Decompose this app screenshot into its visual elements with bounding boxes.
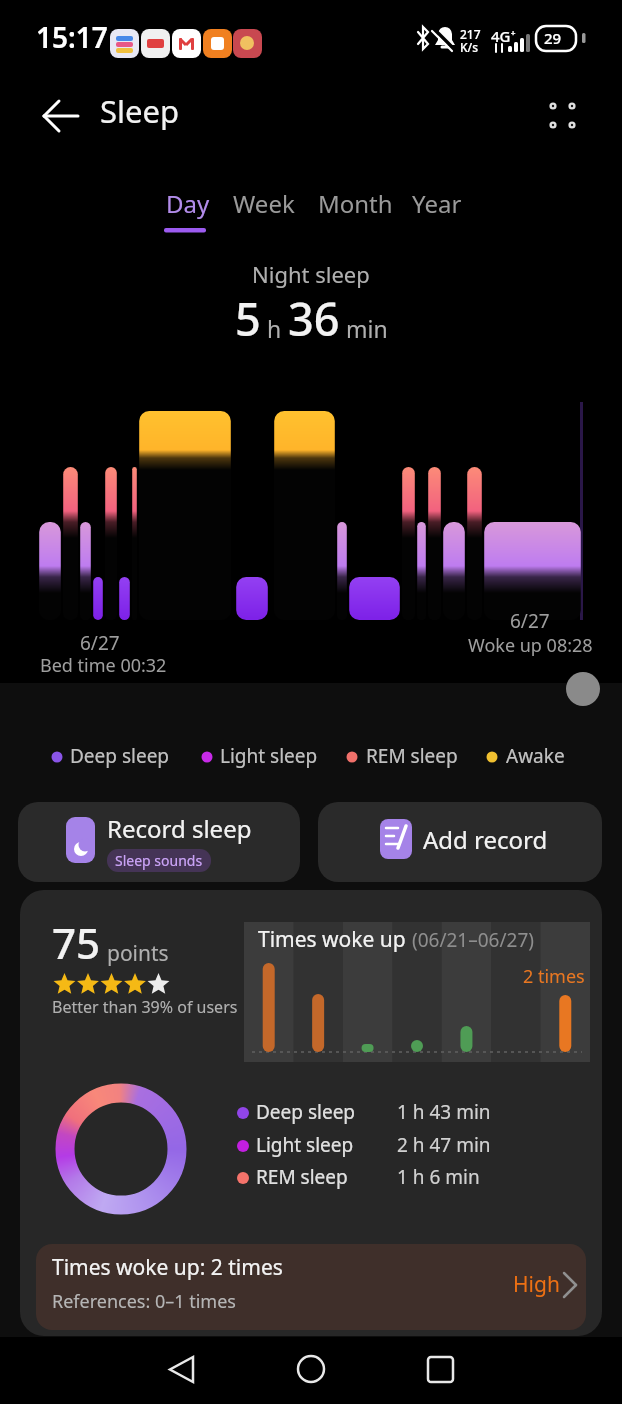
button[interactable] [312,190,392,226]
staticText: 75 [52,914,101,971]
staticText: 2 h 47 min [397,1132,491,1158]
button[interactable] [540,92,588,140]
staticText: Deep sleep [256,1099,356,1125]
staticText: K/s [460,39,479,55]
button[interactable] [566,672,600,706]
button[interactable] [30,92,78,140]
staticText: Week [233,187,295,220]
staticText: Woke up 08:28 [468,633,593,658]
button[interactable] [18,802,300,882]
staticText: 15:17 [36,18,108,56]
staticText: Times woke up: 2 times [52,1253,283,1282]
staticText: 6/27 [80,630,120,656]
staticText: Light sleep [256,1132,354,1158]
staticText: REM sleep [366,743,458,769]
staticText: References: 0–1 times [52,1289,236,1314]
staticText: Month [318,187,393,220]
staticText: Awake [506,743,565,769]
staticText: h [261,313,288,344]
staticText: REM sleep [256,1164,348,1190]
button[interactable] [140,1344,220,1394]
button[interactable] [227,190,295,226]
staticText: 1 h 43 min [397,1099,491,1125]
staticText: Record sleep [107,812,252,845]
staticText: 1 h 6 min [397,1164,480,1190]
staticText: Better than 39% of users [52,996,238,1018]
button[interactable] [406,190,462,226]
staticText: Deep sleep [70,743,170,769]
staticText: 29 [544,28,562,48]
staticText: Day [166,187,210,220]
staticText: 217 [460,26,481,42]
staticText: 2 times [523,964,585,989]
staticText: 6/27 [510,608,550,634]
staticText: Bed time 00:32 [40,653,167,678]
staticText: High [513,1270,560,1299]
staticText: Year [412,187,462,220]
button[interactable] [318,802,602,882]
staticText: 4G⁺ [491,26,516,46]
staticText: min [340,313,388,344]
staticText: Sleep sounds [115,851,203,870]
button[interactable] [36,1244,586,1330]
button[interactable] [271,1344,351,1394]
button[interactable] [400,1344,480,1394]
staticText: 36 [288,288,340,349]
staticText: Light sleep [220,743,318,769]
staticText: points [107,939,169,968]
staticText: (06/21–06/27) [412,927,534,953]
staticText: Add record [423,823,548,856]
staticText: Night sleep [252,259,370,289]
button[interactable] [160,190,212,226]
staticText: Times woke up [258,925,412,954]
staticText: 5 [235,288,261,349]
staticText: Sleep [100,90,180,132]
